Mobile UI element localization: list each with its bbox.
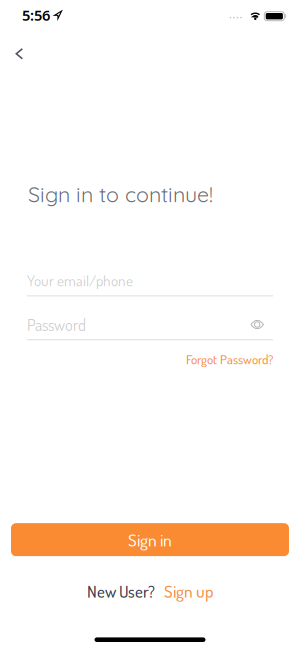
button[interactable]: Sign in <box>11 523 289 556</box>
button[interactable]: Sign up <box>164 580 213 602</box>
staticText: Your email/phone <box>27 271 133 290</box>
staticText: Sign in <box>128 529 172 551</box>
staticText: 5:56 <box>22 5 50 25</box>
button[interactable]: Forgot Password? <box>186 351 273 367</box>
button[interactable]: Back <box>0 32 23 68</box>
staticText: Password <box>27 314 86 335</box>
staticText: Sign in to continue! <box>28 181 213 208</box>
staticText: Sign up <box>164 580 213 602</box>
staticText: Forgot Password? <box>186 351 273 367</box>
button[interactable]: Show password <box>250 319 273 329</box>
staticText: New User? <box>87 580 155 602</box>
